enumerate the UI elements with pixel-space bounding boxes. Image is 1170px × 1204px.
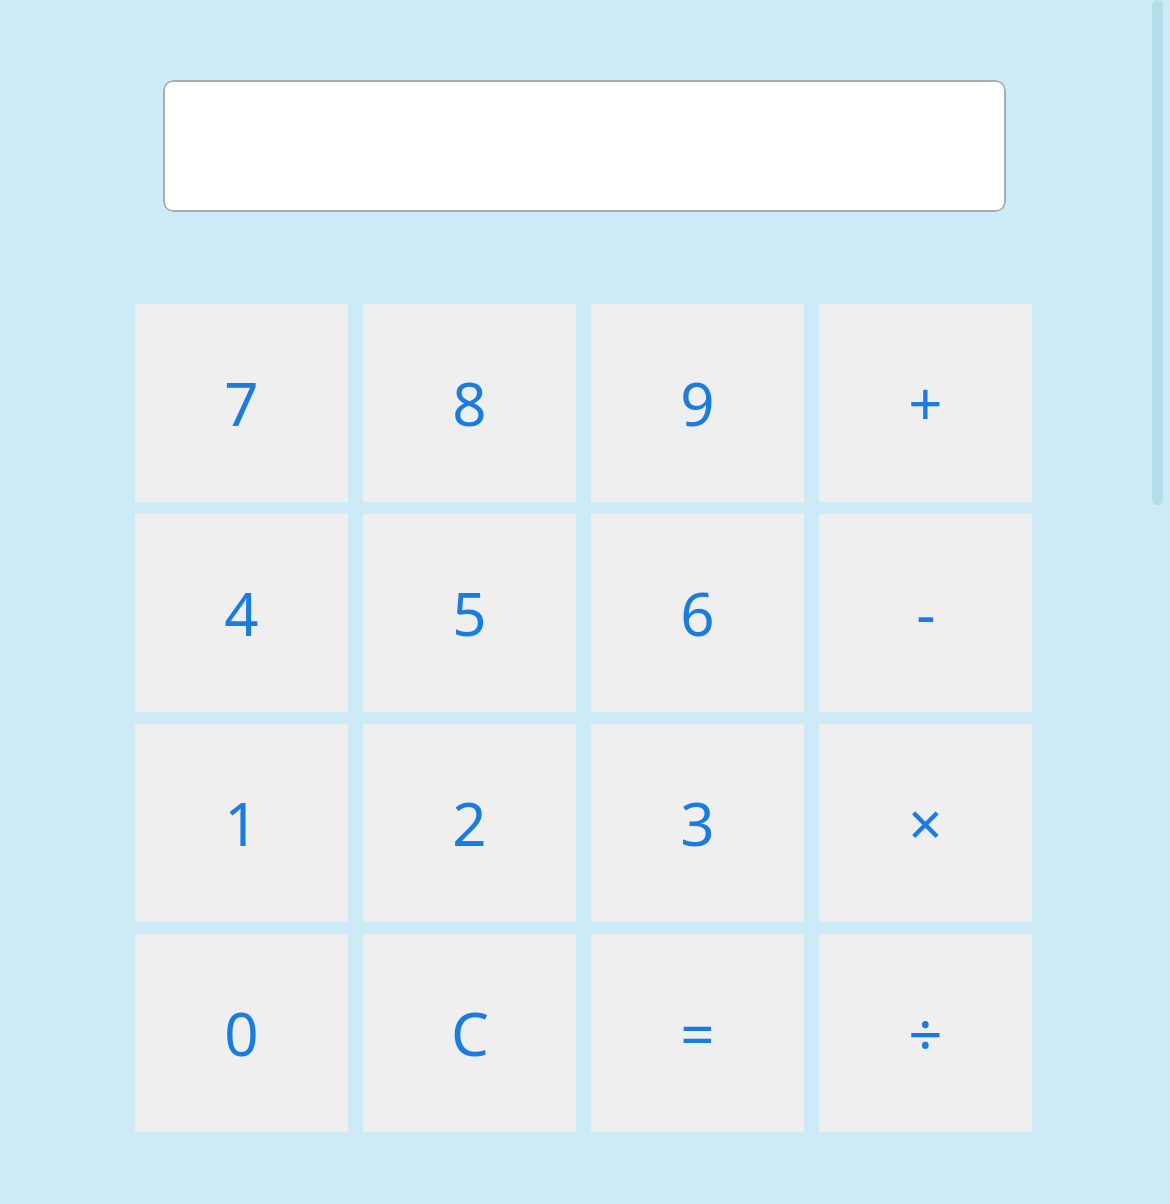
button[interactable]: 7: [135, 304, 348, 502]
button[interactable]: Expression input: [163, 80, 1006, 212]
staticText: 8: [452, 362, 487, 444]
button[interactable]: 6: [591, 514, 804, 712]
staticText: C: [451, 992, 489, 1074]
staticText: 3: [680, 782, 715, 864]
staticText: +: [908, 362, 943, 444]
button[interactable]: Plus: [819, 304, 1032, 502]
staticText: 9: [680, 362, 715, 444]
staticText: 6: [680, 572, 715, 654]
staticText: 0: [224, 992, 259, 1074]
staticText: =: [680, 992, 715, 1074]
button[interactable]: 8: [363, 304, 576, 502]
button[interactable]: 9: [591, 304, 804, 502]
button[interactable]: Clear: [363, 934, 576, 1132]
button[interactable]: Divide: [819, 934, 1032, 1132]
button[interactable]: 1: [135, 724, 348, 922]
staticText: ×: [908, 782, 943, 864]
staticText: 7: [224, 362, 259, 444]
staticText: 5: [452, 572, 487, 654]
staticText: 2: [452, 782, 487, 864]
staticText: 1: [224, 782, 259, 864]
button[interactable]: 3: [591, 724, 804, 922]
button[interactable]: 0: [135, 934, 348, 1132]
button[interactable]: Equals: [591, 934, 804, 1132]
button[interactable]: Minus: [819, 514, 1032, 712]
staticText: -: [916, 572, 936, 654]
button[interactable]: 2: [363, 724, 576, 922]
staticText: ÷: [908, 992, 943, 1074]
button[interactable]: Multiply: [819, 724, 1032, 922]
button[interactable]: 5: [363, 514, 576, 712]
button[interactable]: 4: [135, 514, 348, 712]
staticText: 4: [224, 572, 259, 654]
